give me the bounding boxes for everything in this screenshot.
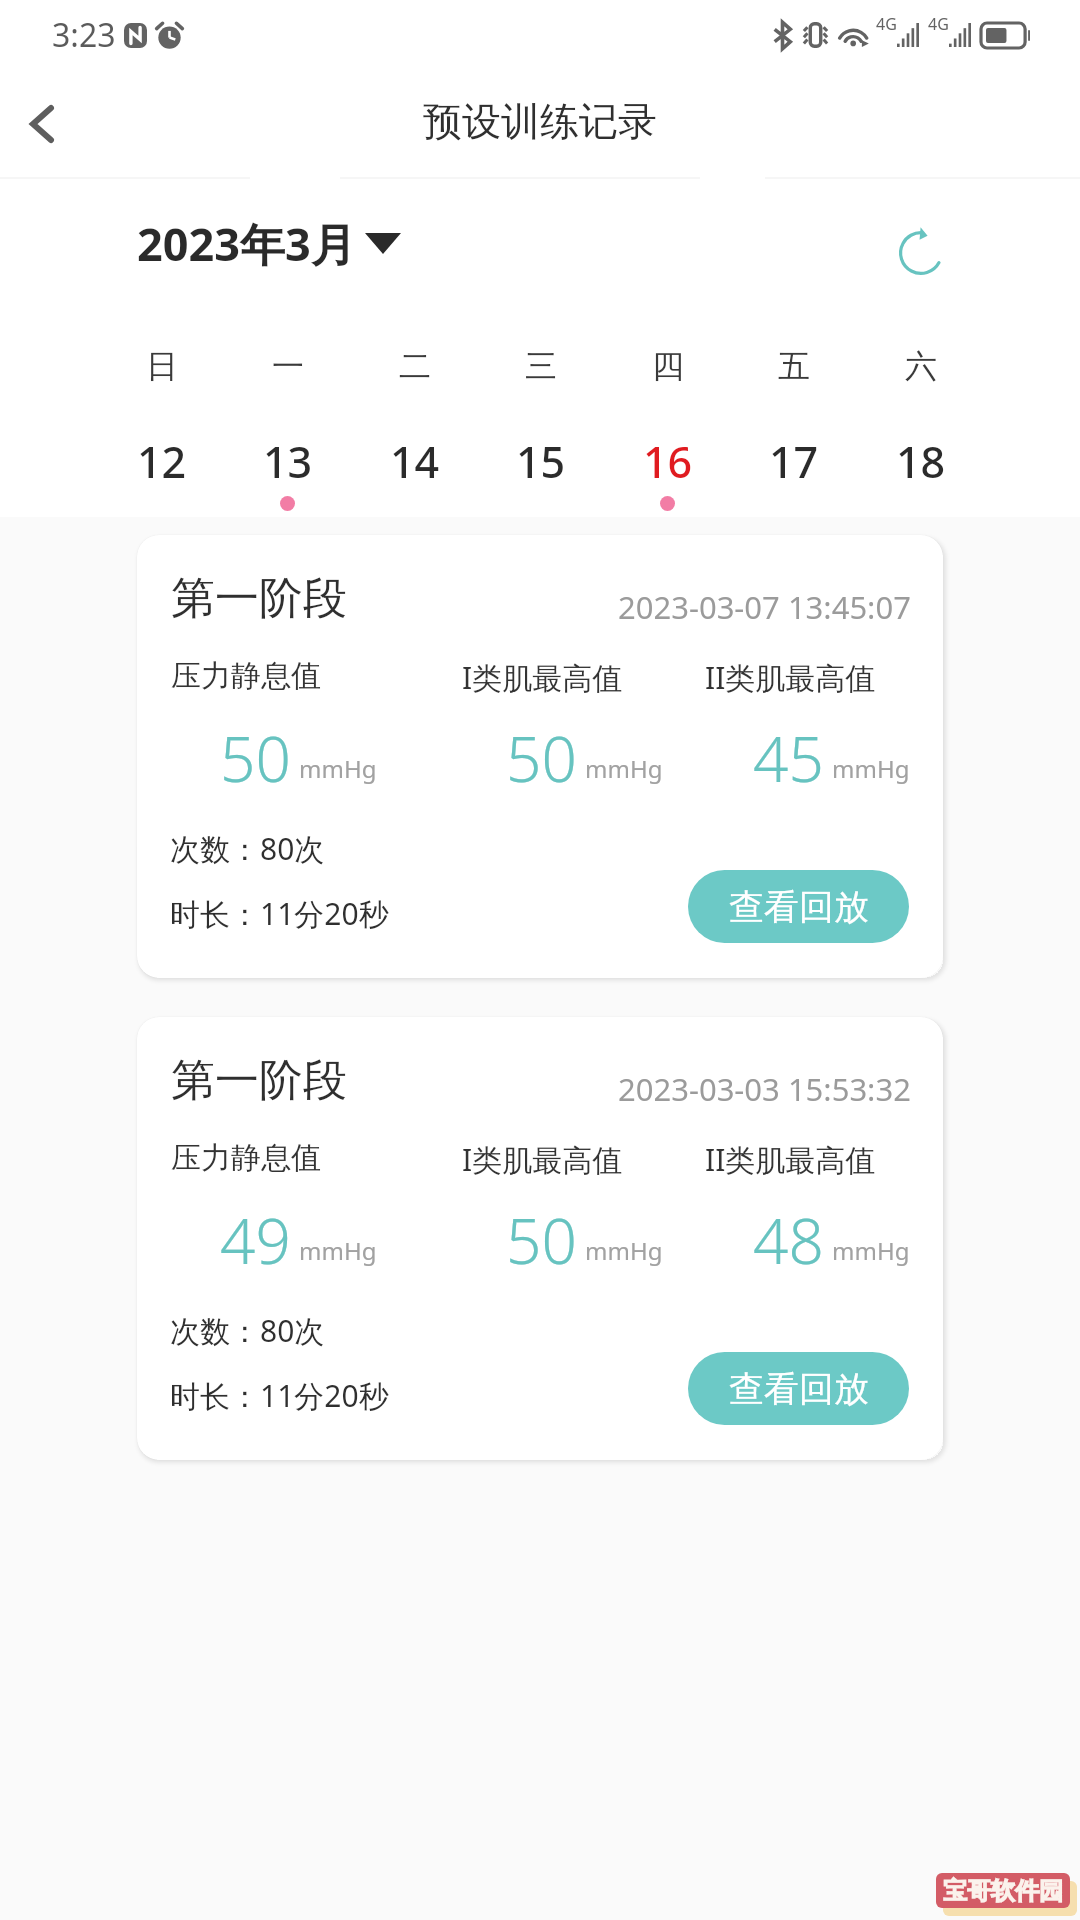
staticText: 压力静息值 — [171, 657, 321, 695]
staticText: 四 — [652, 346, 684, 386]
staticText: 2023年3月 — [137, 213, 356, 274]
staticText: 12 — [137, 432, 187, 491]
staticText: 时长：11分20秒 — [170, 893, 389, 934]
staticText: 17 — [769, 432, 819, 491]
staticText: II类肌最高值 — [705, 1139, 876, 1180]
staticText: 三 — [525, 346, 557, 386]
staticText: 14 — [390, 432, 440, 491]
button[interactable]: 查看回放 — [688, 870, 909, 943]
staticText: mmHg — [585, 752, 663, 785]
button[interactable]: 五 — [730, 320, 857, 500]
staticText: 第一阶段 — [171, 571, 347, 626]
staticText: 第一阶段 — [171, 1053, 347, 1108]
staticText: 2023-03-03 15:53:32 — [618, 1068, 911, 1110]
button[interactable]: 查看回放 — [688, 1352, 909, 1425]
button[interactable]: 四 — [604, 320, 731, 500]
staticText: II类肌最高值 — [705, 657, 876, 698]
staticText: 六 — [905, 346, 937, 386]
staticText: 次数：80次 — [170, 828, 325, 869]
staticText: 二 — [399, 346, 431, 386]
button[interactable]: Refresh — [886, 218, 956, 288]
staticText: mmHg — [585, 1234, 663, 1267]
button[interactable]: Back — [0, 74, 92, 174]
staticText: 预设训练记录 — [423, 97, 657, 146]
staticText: 16 — [643, 432, 693, 491]
staticText: 50 — [506, 716, 577, 800]
staticText: 时长：11分20秒 — [170, 1375, 389, 1416]
staticText: 日 — [146, 346, 178, 386]
button[interactable]: 第一阶段 — [137, 535, 943, 978]
staticText: mmHg — [299, 1234, 377, 1267]
staticText: 查看回放 — [729, 1367, 869, 1411]
staticText: 18 — [896, 432, 946, 491]
button[interactable]: 日 — [98, 320, 225, 500]
staticText: I类肌最高值 — [462, 657, 623, 698]
staticText: 查看回放 — [729, 885, 869, 929]
staticText: mmHg — [299, 752, 377, 785]
button[interactable]: 一 — [224, 320, 351, 500]
button[interactable]: 第一阶段 — [137, 1017, 943, 1460]
staticText: I类肌最高值 — [462, 1139, 623, 1180]
button[interactable]: 2023年3月 — [137, 213, 401, 274]
staticText: 48 — [753, 1198, 824, 1282]
staticText: 一 — [272, 346, 304, 386]
staticText: mmHg — [832, 1234, 910, 1267]
button[interactable]: 二 — [351, 320, 478, 500]
staticText: 50 — [506, 1198, 577, 1282]
staticText: 压力静息值 — [171, 1139, 321, 1177]
staticText: 4G — [928, 13, 949, 35]
staticText: 宝哥软件园 — [943, 1876, 1063, 1906]
staticText: 13 — [263, 432, 313, 491]
staticText: 4G — [876, 13, 897, 35]
staticText: 3:23 — [52, 13, 116, 57]
button[interactable]: 六 — [857, 320, 984, 500]
staticText: 次数：80次 — [170, 1310, 325, 1351]
staticText: 15 — [516, 432, 566, 491]
button[interactable]: 三 — [477, 320, 604, 500]
staticText: 五 — [778, 346, 810, 386]
staticText: 50 — [220, 716, 291, 800]
staticText: 45 — [753, 716, 824, 800]
staticText: mmHg — [832, 752, 910, 785]
staticText: 2023-03-07 13:45:07 — [618, 586, 911, 628]
staticText: 49 — [220, 1198, 291, 1282]
